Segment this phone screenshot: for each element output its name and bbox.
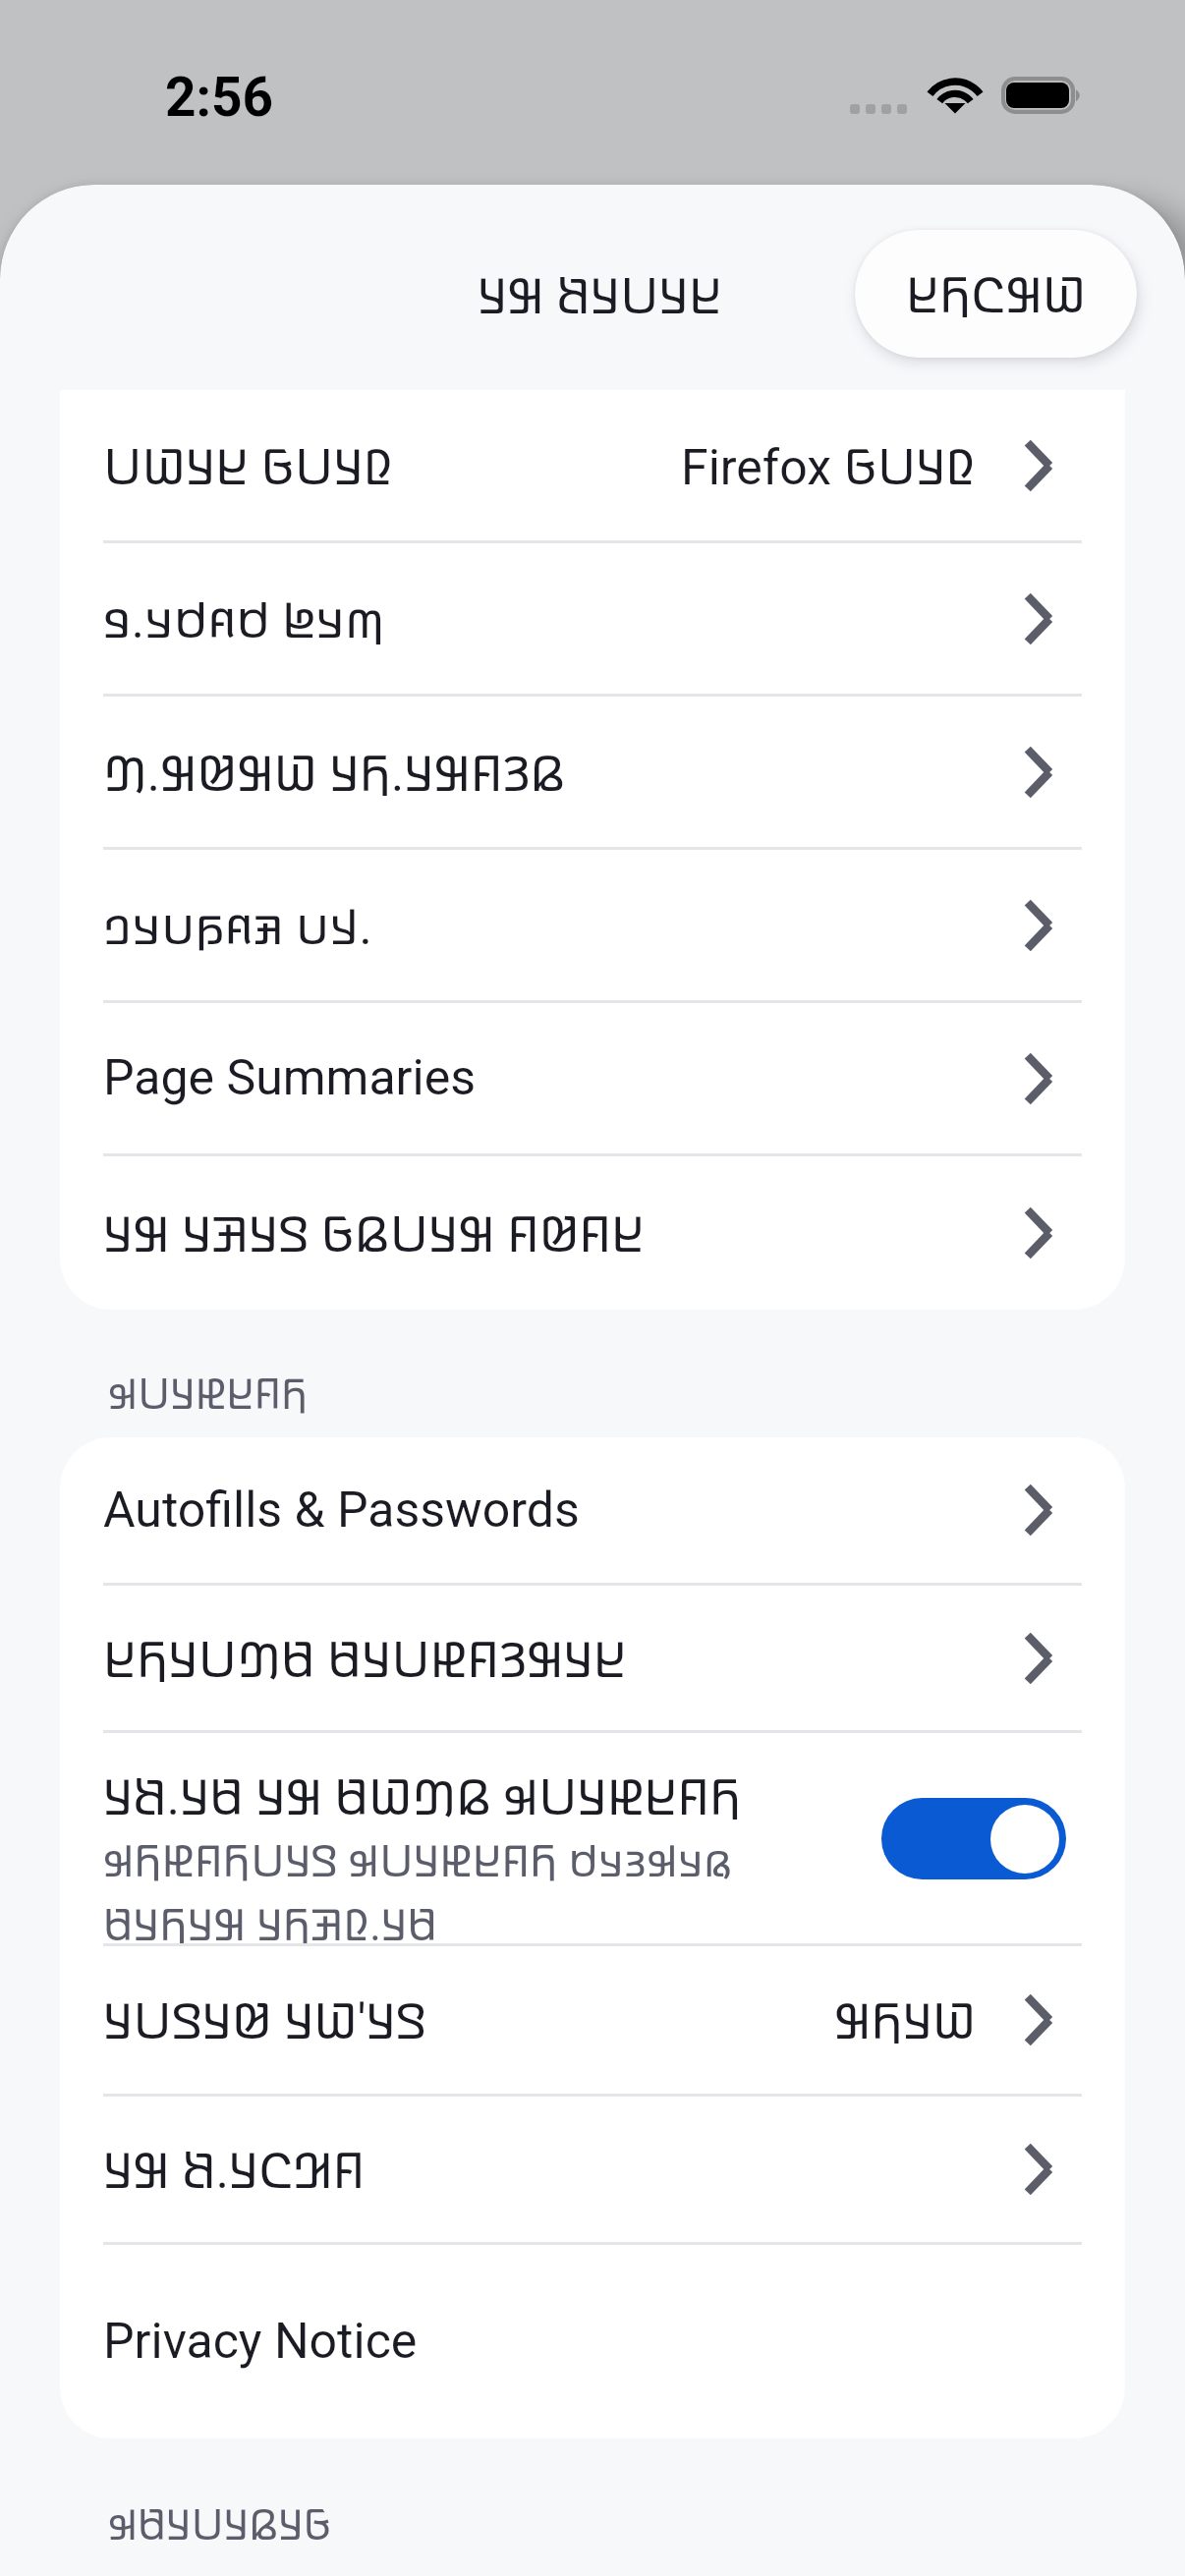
- staticText: 𞤈𞤁𞤋𞤁𞤕 𞤗𞤁: [478, 261, 722, 328]
- staticText: 𞤅𞤁𞤊𞤗: [834, 1987, 977, 2053]
- other: Open: [1022, 1994, 1053, 2045]
- other: Open: [1022, 1633, 1053, 1684]
- staticText: 𞤊𞤏𞤈𞤄𞤁𞤋𞤹 𞤉𞤔𞤅𞤍 𞤗𞤁 𞤍𞤁.𞤕𞤁: [103, 1763, 742, 1829]
- button[interactable]: 𞤏𞤂𞤌𞤁.𞤕 𞤗𞤁: [60, 2097, 1125, 2242]
- staticText: Privacy Notice: [103, 2313, 418, 2371]
- button[interactable]: Page Summaries: [60, 1003, 1125, 1153]
- staticText: 𞤏𞤂𞤌𞤁.𞤕 𞤗𞤁: [103, 2136, 366, 2203]
- button[interactable]: 𞤉𞤒𞤏𞤗𞤁.𞤊𞤁 𞤅𞤗𞤓𞤗.𞤔: [60, 697, 1125, 847]
- button[interactable]: 𞤆𞤁𞤋𞤀 𞤈𞤁𞤅𞤋: [60, 390, 1125, 540]
- staticText: 𞤈𞤁𞤗𞤒𞤏𞤄𞤋𞤁𞤍 𞤍𞤔𞤋𞤁𞤊𞤈: [103, 1625, 627, 1692]
- button[interactable]: 𞤣𞤭 𞤳𞤱𞤬𞤭𞤣𞤤.: [60, 850, 1125, 1000]
- other: Open: [1022, 1207, 1053, 1259]
- staticText: Page Summaries: [103, 1049, 477, 1107]
- staticText: 𞤶𞤣𞤦 𞤯𞤱𞤯𞤣.𞤥: [103, 586, 385, 652]
- staticText: 𞤍𞤁.𞤆𞤑𞤊𞤁 𞤗𞤁𞤊𞤁𞤍: [103, 1894, 438, 1943]
- button[interactable]: 𞤶𞤣𞤦 𞤯𞤱𞤯𞤣.𞤥: [60, 543, 1125, 694]
- staticText: 𞤫𞤣𞤹𞤴𞤣𞤯 𞤊𞤏𞤈𞤄𞤁𞤋𞤹 𞤃𞤁𞤋𞤊𞤏𞤄𞤊𞤹: [103, 1830, 733, 1889]
- button[interactable]: Toggle privacy mode: [881, 1798, 1066, 1879]
- staticText: 𞤃𞤁'𞤅𞤁 𞤓𞤁𞤃𞤋𞤁: [103, 1987, 426, 2053]
- other: Open: [1022, 2144, 1053, 2195]
- button[interactable]: Autofills & Passwords: [60, 1437, 1125, 1583]
- other: Open: [1022, 747, 1053, 798]
- staticText: 𞤅𞤗𞤌𞤊𞤈: [906, 260, 1087, 327]
- button[interactable]: 𞤈𞤏𞤓𞤏 𞤗𞤁𞤋𞤉𞤀 𞤃𞤁𞤑𞤁 𞤗𞤁: [60, 1156, 1125, 1310]
- other: Open: [1022, 1053, 1053, 1104]
- staticText: 2:56: [165, 66, 274, 129]
- staticText: Autofills & Passwords: [103, 1482, 580, 1540]
- other: Open: [1022, 900, 1053, 951]
- staticText: 𞤀𞤁𞤉𞤁𞤋𞤁𞤍𞤹: [108, 2495, 332, 2551]
- staticText: 𞤈𞤏𞤓𞤏 𞤗𞤁𞤋𞤉𞤀 𞤃𞤁𞤑𞤁 𞤗𞤁: [103, 1200, 645, 1266]
- button[interactable]: 𞤃𞤁'𞤅𞤁 𞤓𞤁𞤃𞤋𞤁: [60, 1946, 1125, 2094]
- staticText: 𞤆𞤁𞤋𞤀 𞤈𞤁𞤅𞤋: [103, 432, 394, 499]
- staticText: Firefox 𞤆𞤁𞤋𞤀: [681, 432, 977, 499]
- other: Open: [1022, 593, 1053, 644]
- button[interactable]: Privacy Notice: [60, 2245, 1125, 2438]
- button[interactable]: 𞤅𞤗𞤌𞤊𞤈: [855, 230, 1137, 358]
- staticText: 𞤉𞤒𞤏𞤗𞤁.𞤊𞤁 𞤅𞤗𞤓𞤗.𞤔: [103, 739, 566, 806]
- button[interactable]: 𞤊𞤏𞤈𞤄𞤁𞤋𞤹 𞤉𞤔𞤅𞤍 𞤗𞤁 𞤍𞤁.𞤕𞤁: [60, 1733, 1125, 1943]
- button[interactable]: 𞤈𞤁𞤗𞤒𞤏𞤄𞤋𞤁𞤍 𞤍𞤔𞤋𞤁𞤊𞤈: [60, 1586, 1125, 1730]
- other: Open: [1022, 440, 1053, 491]
- other: Open: [1022, 1484, 1053, 1536]
- staticText: 𞤣𞤭 𞤳𞤱𞤬𞤭𞤣𞤤.: [103, 892, 372, 959]
- staticText: 𞤊𞤏𞤈𞤄𞤁𞤋𞤹: [108, 1365, 309, 1421]
